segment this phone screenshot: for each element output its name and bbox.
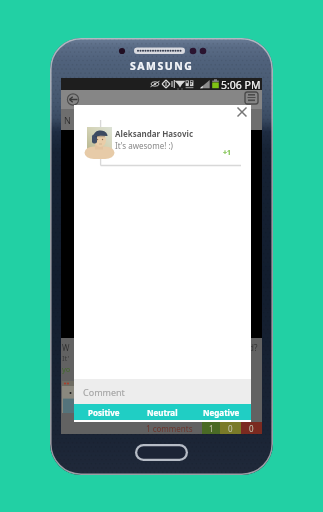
button[interactable]: Close	[233, 103, 251, 121]
staticText: N	[64, 114, 71, 126]
staticText: Aleksandar Hasovic	[115, 128, 194, 139]
staticText: 0	[249, 423, 254, 434]
button[interactable]: 1	[202, 422, 220, 434]
staticText: 5:06 PM	[221, 78, 261, 90]
staticText: Comment	[83, 386, 125, 398]
button[interactable]: Positive	[74, 404, 133, 420]
button[interactable]: Neutral	[133, 404, 192, 420]
button[interactable]: Switch view	[245, 92, 258, 104]
staticText: yo	[62, 364, 71, 374]
button[interactable]: Comment	[74, 379, 251, 404]
staticText: Neutral	[147, 407, 178, 418]
button[interactable]: 0	[241, 422, 262, 434]
staticText: +1	[223, 148, 232, 158]
staticText: 1	[209, 423, 214, 434]
staticText: Negative	[203, 407, 240, 418]
staticText: It's awesome! :)	[115, 140, 173, 151]
button[interactable]: Back	[65, 90, 83, 108]
button[interactable]: 0	[220, 422, 241, 434]
staticText: W	[62, 342, 70, 353]
staticText: SAMSUNG	[130, 59, 194, 73]
button[interactable]: Negative	[192, 404, 251, 420]
staticText: d?	[249, 342, 258, 353]
staticText: Positive	[88, 407, 120, 418]
button[interactable]: +1	[223, 148, 232, 158]
staticText: It'	[62, 353, 70, 363]
staticText: 1 comments	[146, 423, 193, 434]
staticText: 0	[228, 423, 233, 434]
